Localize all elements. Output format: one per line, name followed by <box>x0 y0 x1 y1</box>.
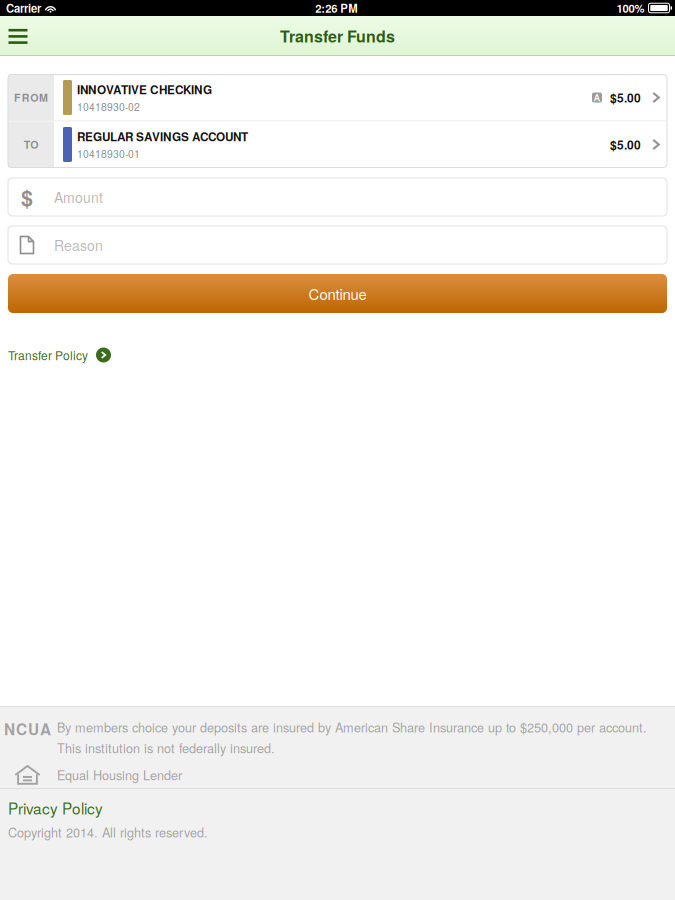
button[interactable]: FROM <box>8 74 667 120</box>
staticText: Continue <box>308 283 366 304</box>
staticText: Copyright 2014. All rights reserved. <box>8 823 208 841</box>
staticText: $5.00 <box>610 136 641 153</box>
staticText: TO <box>24 137 38 152</box>
button[interactable]: Privacy Policy <box>8 799 103 817</box>
staticText: Transfer Funds <box>280 24 395 47</box>
button[interactable]: Continue <box>8 274 667 313</box>
staticText: FROM <box>14 90 48 105</box>
staticText: Amount <box>54 187 103 207</box>
button[interactable]: TO <box>8 121 667 167</box>
staticText: Reason <box>54 235 103 255</box>
staticText: By members choice your deposits are insu… <box>57 718 647 757</box>
staticText: 10418930-01 <box>77 146 140 161</box>
staticText: REGULAR SAVINGS ACCOUNT <box>77 128 248 145</box>
staticText: $5.00 <box>610 89 641 106</box>
staticText: Equal Housing Lender <box>57 766 182 784</box>
staticText: 10418930-02 <box>77 99 140 114</box>
staticText: $ <box>21 182 33 212</box>
staticText: 2:26 PM <box>315 0 357 16</box>
button[interactable]: Transfer Policy <box>8 343 111 367</box>
staticText: NCUA <box>4 718 51 740</box>
staticText: A <box>593 91 600 104</box>
staticText: Privacy Policy <box>8 797 103 819</box>
staticText: Transfer Policy <box>8 346 88 364</box>
staticText: INNOVATIVE CHECKING <box>77 81 212 98</box>
staticText: Carrier <box>6 0 41 16</box>
button[interactable]: Menu <box>0 19 36 53</box>
staticText: 100% <box>616 0 644 16</box>
